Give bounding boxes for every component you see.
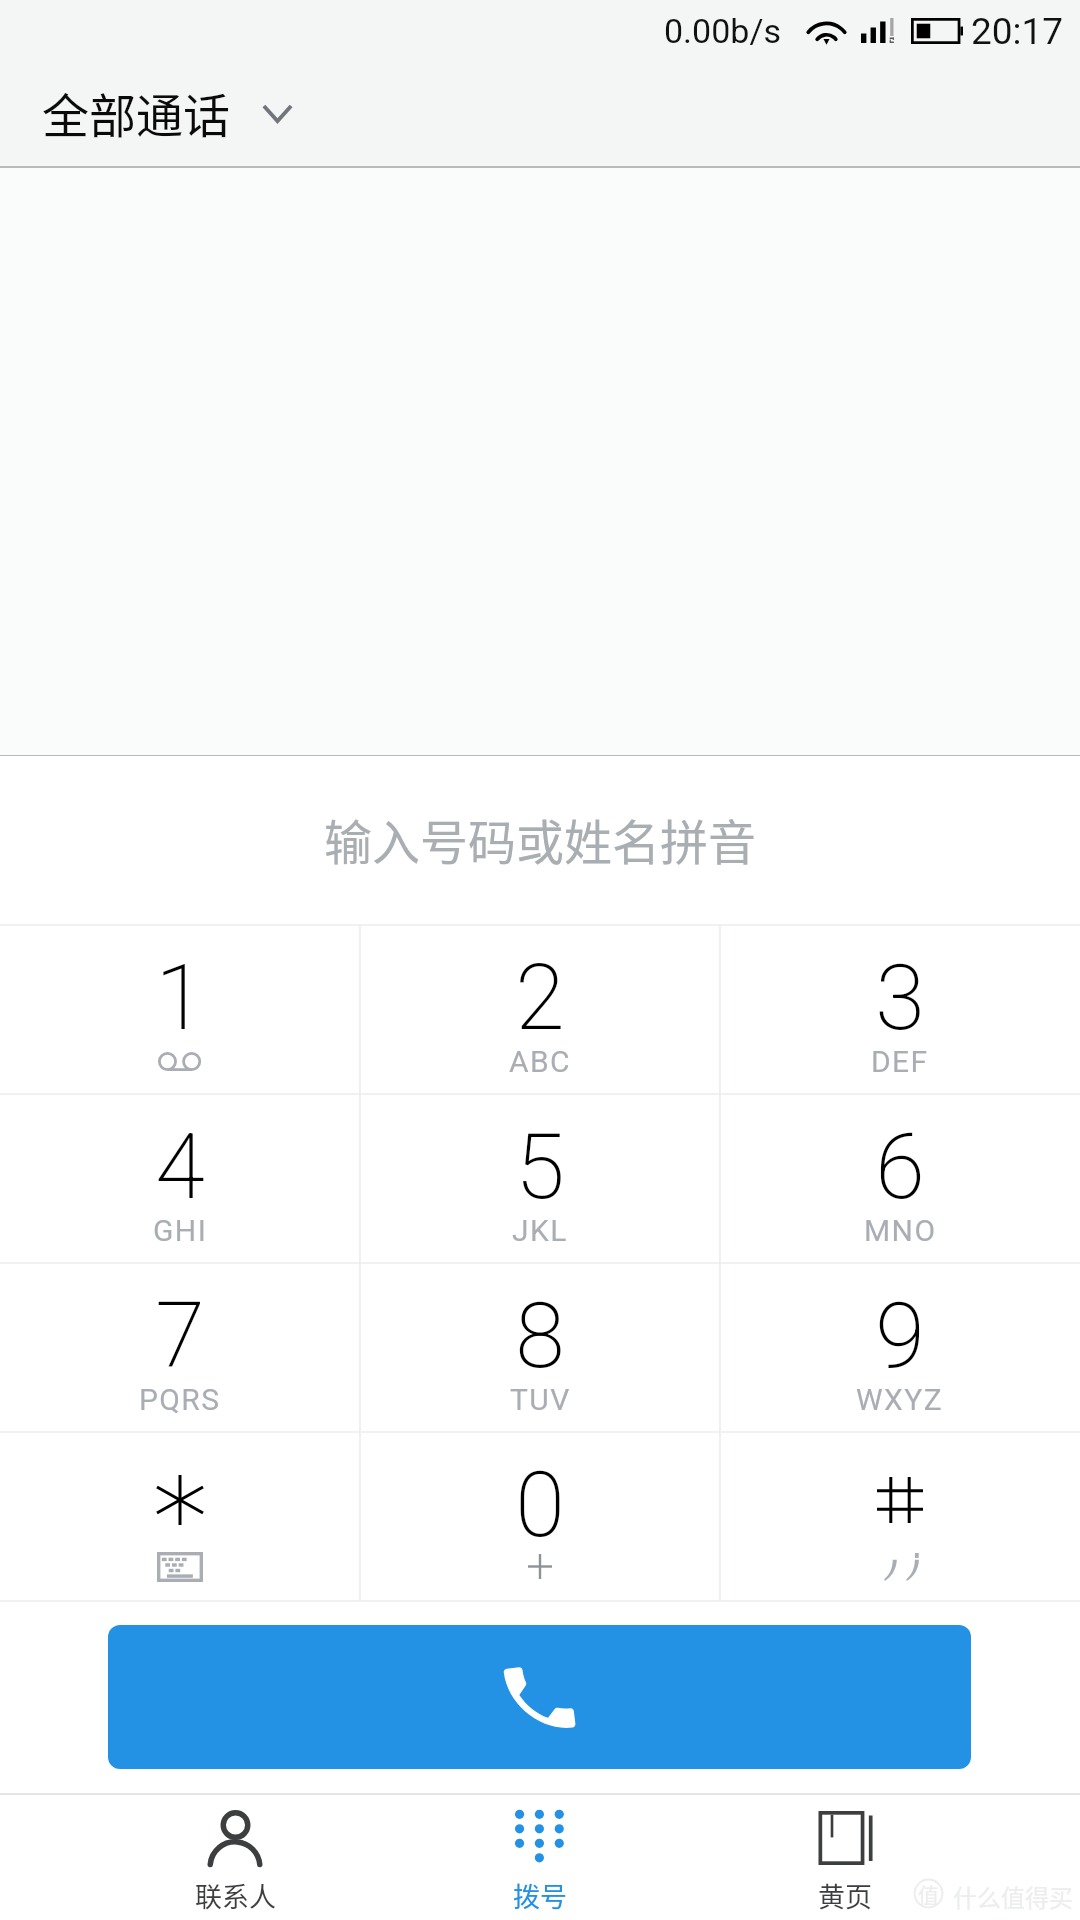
staticText: 黄页 — [818, 1876, 872, 1915]
button[interactable]: Dialpad — [387, 1795, 692, 1920]
staticText: JKL — [512, 1213, 568, 1248]
staticText: 7 — [155, 1284, 205, 1389]
staticText: 3 — [875, 946, 925, 1051]
staticText: DEF — [871, 1044, 929, 1079]
staticText: 全部通话 — [42, 78, 230, 146]
button[interactable] — [0, 1432, 360, 1601]
staticText: 20:17 — [971, 10, 1064, 53]
button[interactable]: 7 — [0, 1263, 360, 1432]
button[interactable]: 全部通话 — [0, 68, 319, 156]
staticText: 9 — [875, 1284, 925, 1389]
button[interactable]: 2 — [360, 925, 720, 1094]
staticText: 8 — [515, 1284, 565, 1389]
staticText: GHI — [153, 1213, 208, 1248]
staticText: 拨号 — [513, 1876, 567, 1915]
staticText: 6 — [875, 1115, 925, 1220]
staticText: 0.00b/s — [664, 11, 781, 51]
button[interactable]: 3 — [720, 925, 1080, 1094]
staticText: 输入号码或姓名拼音 — [324, 804, 757, 874]
staticText: PQRS — [139, 1382, 221, 1417]
staticText: TUV — [510, 1382, 571, 1417]
staticText: ABC — [509, 1044, 571, 1079]
button[interactable]: 6 — [720, 1094, 1080, 1263]
staticText: 值 — [918, 1879, 939, 1909]
button[interactable]: 0 — [360, 1432, 720, 1601]
staticText: MNO — [864, 1213, 937, 1248]
button[interactable]: Yellow pages — [692, 1795, 997, 1920]
staticText: 5 — [515, 1115, 565, 1220]
staticText: WXYZ — [856, 1382, 944, 1417]
staticText: 2 — [515, 946, 565, 1051]
button[interactable]: 4 — [0, 1094, 360, 1263]
staticText: 什么值得买 — [953, 1879, 1073, 1914]
button[interactable]: Contacts — [83, 1795, 387, 1920]
staticText: 联系人 — [195, 1876, 276, 1915]
staticText: 1 — [155, 946, 205, 1051]
button[interactable]: 5 — [360, 1094, 720, 1263]
button[interactable]: 9 — [720, 1263, 1080, 1432]
staticText: 0 — [515, 1453, 565, 1558]
button[interactable] — [720, 1432, 1080, 1601]
button[interactable]: 8 — [360, 1263, 720, 1432]
button[interactable]: 1 — [0, 925, 360, 1094]
button[interactable]: Call — [108, 1625, 971, 1769]
staticText: 4 — [155, 1115, 205, 1220]
